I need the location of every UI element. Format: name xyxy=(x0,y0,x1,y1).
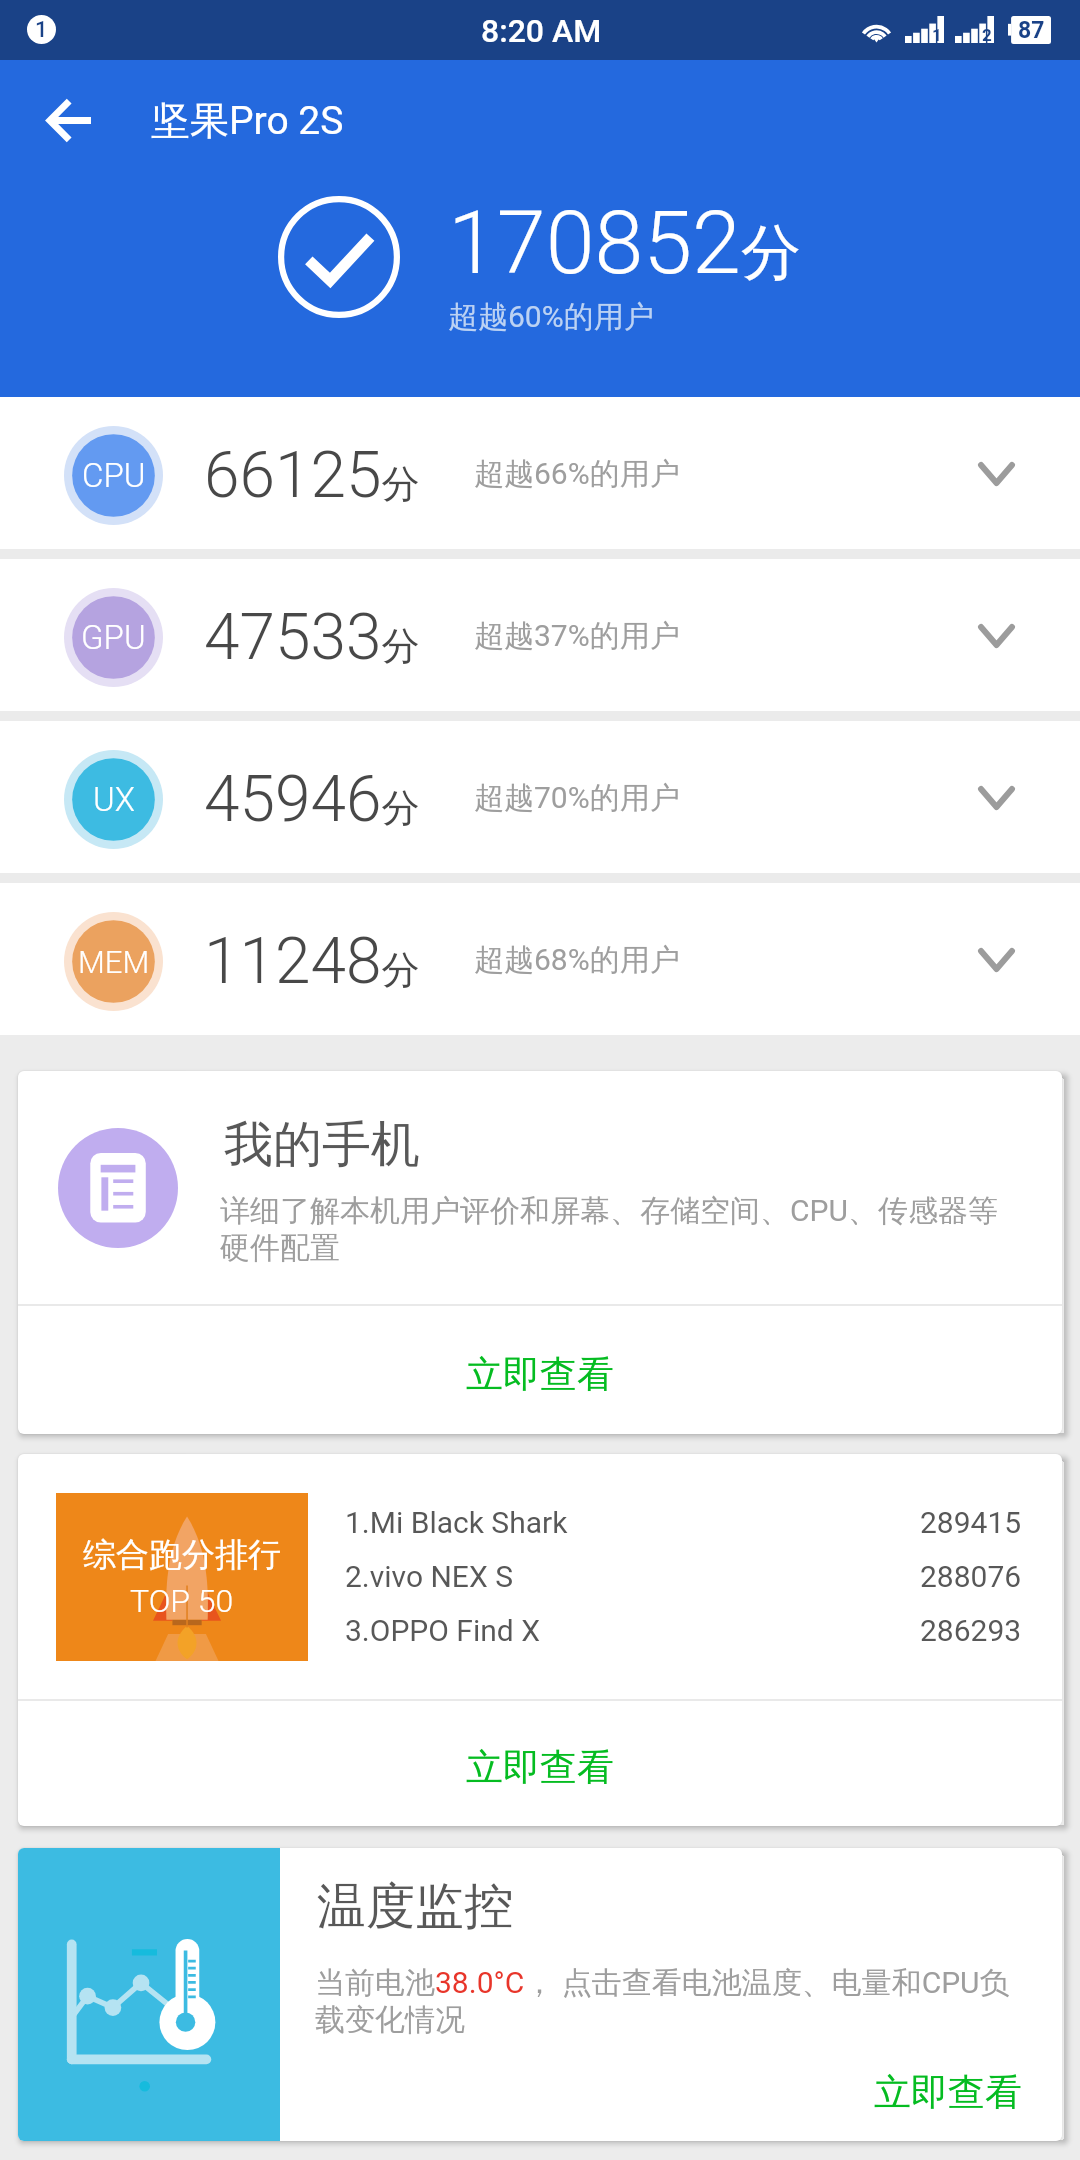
staticText: 45946分 xyxy=(204,762,420,837)
button[interactable]: GPU xyxy=(0,559,1080,711)
staticText: 我的手机 xyxy=(224,1114,420,1176)
button[interactable]: Expand xyxy=(958,436,1034,512)
button[interactable]: Expand xyxy=(958,598,1034,674)
staticText: 2.vivo NEX S xyxy=(345,1559,513,1594)
staticText: 286293 xyxy=(920,1613,1022,1648)
staticText: 超越66%的用户 xyxy=(474,455,680,493)
button[interactable]: Back xyxy=(30,80,110,160)
button[interactable]: CPU xyxy=(0,397,1080,549)
staticText: 8:20 AM xyxy=(481,12,602,50)
staticText: 超越60%的用户 xyxy=(448,298,654,336)
staticText: 1.Mi Black Shark xyxy=(345,1505,568,1540)
staticText: 详细了解本机用户评价和屏幕、存储空间、CPU、传感器等硬件配置 xyxy=(220,1192,1015,1267)
staticText: 立即查看 xyxy=(874,2069,1022,2116)
button[interactable]: 立即查看 xyxy=(18,1306,1062,1434)
staticText: 2 xyxy=(982,25,992,45)
staticText: 坚果Pro 2S xyxy=(151,96,344,145)
staticText: GPU xyxy=(81,618,146,657)
staticText: 66125分 xyxy=(204,438,420,513)
button[interactable]: Expand xyxy=(958,760,1034,836)
staticText: 1 xyxy=(932,25,942,45)
staticText: UX xyxy=(93,780,135,819)
button[interactable]: 立即查看 xyxy=(874,2069,1022,2116)
staticText: 温度监控 xyxy=(317,1876,513,1938)
button[interactable]: Expand xyxy=(958,922,1034,998)
staticText: 170852分 xyxy=(448,191,801,294)
button[interactable]: 温度监控 xyxy=(18,1848,1062,2141)
staticText: 47533分 xyxy=(204,600,420,675)
staticText: 3.OPPO Find X xyxy=(345,1613,540,1648)
staticText: 11248分 xyxy=(204,924,420,999)
staticText: 超越70%的用户 xyxy=(474,779,680,817)
button[interactable]: MEM xyxy=(0,883,1080,1035)
staticText: 立即查看 xyxy=(466,1351,614,1398)
button[interactable]: UX xyxy=(0,721,1080,873)
staticText: CPU xyxy=(82,456,146,495)
staticText: 87 xyxy=(1018,17,1045,44)
staticText: TOP 50 xyxy=(130,1582,234,1620)
staticText: MEM xyxy=(78,944,150,980)
staticText: 289415 xyxy=(920,1505,1022,1540)
button[interactable]: 立即查看 xyxy=(18,1701,1062,1826)
staticText: 288076 xyxy=(920,1559,1022,1594)
staticText: 超越68%的用户 xyxy=(474,941,680,979)
staticText: 当前电池38.0°C， 点击查看电池温度、电量和CPU负载变化情况 xyxy=(315,1964,1021,2039)
staticText: 1 xyxy=(35,17,48,43)
staticText: 立即查看 xyxy=(466,1744,614,1791)
button[interactable]: 我的手机 xyxy=(18,1071,1062,1304)
staticText: 超越37%的用户 xyxy=(474,617,680,655)
staticText: 综合跑分排行 xyxy=(83,1534,281,1576)
button[interactable]: 综合跑分排行 xyxy=(18,1454,1062,1699)
